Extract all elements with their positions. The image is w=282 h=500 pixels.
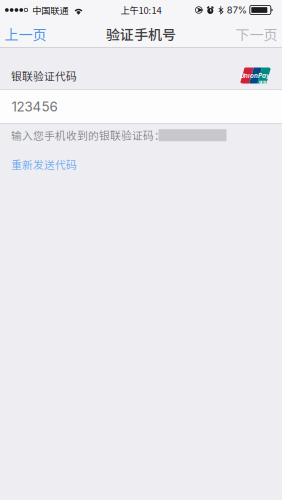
staticText: 下一页	[235, 24, 277, 44]
staticText: 123456	[11, 98, 57, 115]
staticText: 上午10:14	[120, 3, 161, 17]
staticText: 重新发送代码	[11, 157, 77, 172]
staticText: 87%	[227, 4, 247, 16]
button[interactable]: 下一页	[231, 18, 282, 50]
button[interactable]: 上一页	[0, 18, 51, 50]
staticText: 银联	[259, 79, 267, 85]
staticText: 中国联通	[32, 3, 68, 17]
staticText: 银联验证代码	[11, 68, 77, 83]
staticText: 上一页	[4, 24, 46, 44]
button[interactable]: 重新发送代码	[11, 153, 77, 176]
staticText: 验证手机号	[106, 24, 176, 44]
staticText: UnionPay	[240, 72, 270, 79]
staticText: 输入您手机收到的银联验证码：	[11, 127, 165, 143]
